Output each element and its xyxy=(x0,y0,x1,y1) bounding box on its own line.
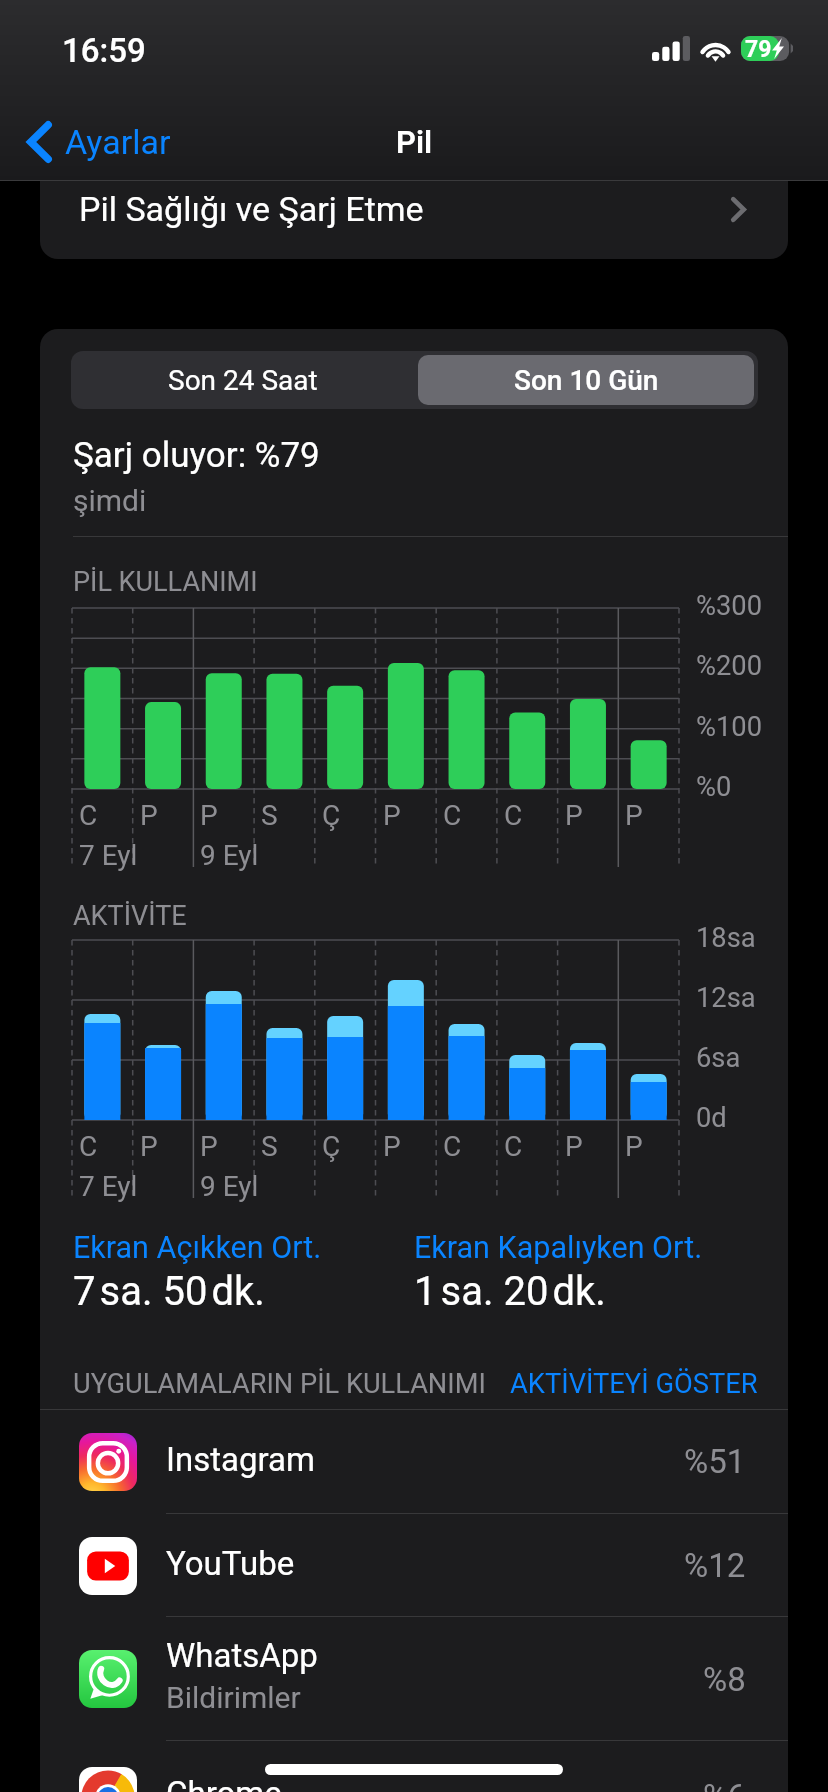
staticText: %0 xyxy=(696,771,732,803)
staticText: S xyxy=(261,799,278,832)
other: Battery 79 percent charging xyxy=(741,36,793,61)
staticText: Chrome xyxy=(166,1774,282,1792)
staticText: Ç xyxy=(322,1130,341,1163)
staticText: P xyxy=(565,799,583,832)
staticText: 9 Eyl xyxy=(200,1170,259,1203)
button[interactable]: Chrome xyxy=(40,1741,788,1792)
staticText: 7 Eyl xyxy=(79,839,138,872)
staticText: 18sa xyxy=(696,922,756,954)
button[interactable]: Pil Sağlığı ve Şarj Etme xyxy=(40,159,788,259)
staticText: 7 Eyl xyxy=(79,1170,138,1203)
button[interactable]: Instagram xyxy=(40,1409,788,1514)
staticText: Ekran Açıkken Ort. xyxy=(73,1230,322,1266)
staticText: P xyxy=(383,799,401,832)
staticText: 12sa xyxy=(696,982,756,1014)
button[interactable]: AKTİVİTEYİ GÖSTER xyxy=(510,1368,758,1400)
staticText: Pil Sağlığı ve Şarj Etme xyxy=(79,189,424,229)
staticText: C xyxy=(504,799,523,832)
staticText: 9 Eyl xyxy=(200,839,259,872)
staticText: Son 24 Saat xyxy=(168,364,318,397)
staticText: Son 10 Gün xyxy=(514,364,659,397)
staticText: Ayarlar xyxy=(65,122,171,162)
button[interactable]: Son 24 Saat xyxy=(71,351,414,409)
staticText: S xyxy=(261,1130,278,1163)
staticText: YouTube xyxy=(166,1544,295,1583)
staticText: P xyxy=(383,1130,401,1163)
staticText: PİL KULLANIMI xyxy=(73,566,258,598)
staticText: %100 xyxy=(696,711,763,743)
staticText: %300 xyxy=(696,590,763,622)
staticText: Ekran Kapalıyken Ort. xyxy=(414,1230,703,1266)
staticText: C xyxy=(79,799,98,832)
staticText: P xyxy=(565,1130,583,1163)
staticText: P xyxy=(200,799,218,832)
staticText: Pil xyxy=(396,124,432,160)
staticText: UYGULAMALARIN PİL KULLANIMI xyxy=(73,1368,486,1400)
staticText: AKTİVİTE xyxy=(73,900,187,932)
staticText: 0d xyxy=(696,1102,727,1134)
staticText: C xyxy=(443,799,462,832)
staticText: Şarj oluyor: %79 xyxy=(73,435,320,476)
staticText: %200 xyxy=(696,650,763,682)
staticText: AKTİVİTEYİ GÖSTER xyxy=(510,1368,758,1400)
button[interactable]: Son 10 Gün xyxy=(418,355,754,405)
staticText: Ç xyxy=(322,799,341,832)
staticText: Bildirimler xyxy=(166,1680,301,1715)
staticText: P xyxy=(625,799,643,832)
staticText: WhatsApp xyxy=(166,1636,318,1675)
other: Cellular signal xyxy=(652,36,690,61)
button[interactable]: YouTube xyxy=(40,1514,788,1617)
staticText: P xyxy=(140,1130,158,1163)
staticText: %8 xyxy=(703,1660,746,1699)
button[interactable]: WhatsApp xyxy=(40,1617,788,1741)
other: Wi-Fi xyxy=(699,36,732,61)
staticText: şimdi xyxy=(73,483,147,518)
staticText: 6sa xyxy=(696,1042,741,1074)
staticText: %51 xyxy=(684,1442,746,1481)
staticText: P xyxy=(140,799,158,832)
staticText: P xyxy=(625,1130,643,1163)
staticText: P xyxy=(200,1130,218,1163)
staticText: C xyxy=(504,1130,523,1163)
staticText: Instagram xyxy=(166,1440,315,1479)
staticText: C xyxy=(443,1130,462,1163)
staticText: 79 xyxy=(745,36,772,61)
staticText: 1 sa. 20 dk. xyxy=(414,1268,606,1315)
staticText: C xyxy=(79,1130,98,1163)
staticText: %12 xyxy=(684,1546,746,1585)
staticText: 16:59 xyxy=(62,31,146,70)
button[interactable]: Ayarlar xyxy=(23,115,175,169)
staticText: 7 sa. 50 dk. xyxy=(73,1268,265,1315)
staticText: %6 xyxy=(703,1777,746,1792)
